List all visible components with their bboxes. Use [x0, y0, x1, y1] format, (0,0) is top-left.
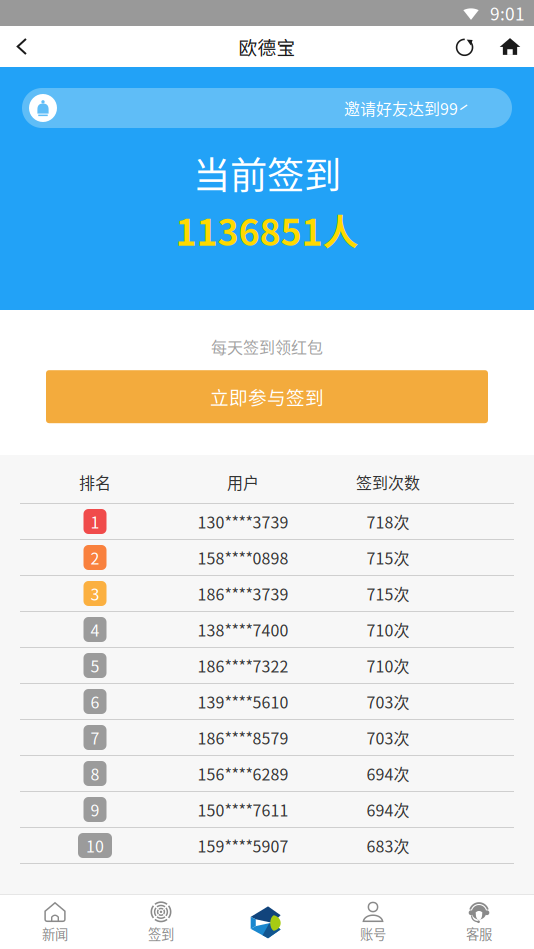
- staticText: 683次: [366, 834, 409, 857]
- staticText: 1: [90, 510, 99, 533]
- button[interactable]: 签到: [108, 895, 214, 949]
- staticText: 10: [86, 834, 104, 857]
- staticText: 9:01: [490, 0, 525, 26]
- button[interactable]: 客服: [426, 895, 532, 949]
- staticText: 5: [90, 654, 99, 677]
- staticText: 186****3739: [197, 582, 288, 605]
- staticText: 欧德宝: [238, 33, 295, 60]
- button[interactable]: 新闻: [2, 895, 108, 949]
- staticText: 139****5610: [197, 690, 288, 713]
- button[interactable]: 刷新: [444, 26, 486, 67]
- staticText: 156****6289: [197, 762, 288, 785]
- staticText: 账号: [360, 924, 386, 943]
- staticText: 3: [90, 582, 99, 605]
- staticText: 715次: [366, 546, 409, 569]
- button[interactable]: 立即参与签到: [46, 370, 488, 423]
- staticText: 710次: [366, 618, 409, 641]
- staticText: 新闻: [42, 924, 68, 943]
- staticText: 703次: [366, 726, 409, 749]
- staticText: 签到: [148, 924, 174, 943]
- staticText: 186****8579: [197, 726, 288, 749]
- button[interactable]: 欧德宝: [214, 895, 320, 949]
- staticText: 158****0898: [197, 546, 288, 569]
- staticText: 2: [90, 546, 99, 569]
- staticText: 1136851人: [175, 204, 358, 256]
- staticText: 7: [90, 726, 99, 749]
- staticText: 6: [90, 690, 99, 713]
- staticText: 每天签到领红包: [211, 335, 323, 358]
- staticText: 9: [90, 798, 99, 821]
- button[interactable]: 邀请好友达到99: [22, 88, 512, 128]
- staticText: 4: [90, 618, 99, 641]
- staticText: 710次: [366, 654, 409, 677]
- staticText: 排名: [79, 470, 111, 494]
- staticText: 159****5907: [197, 834, 288, 857]
- staticText: 邀请好友达到99: [344, 96, 458, 120]
- staticText: 8: [90, 762, 99, 785]
- staticText: 130****3739: [197, 510, 288, 533]
- staticText: 150****7611: [197, 798, 288, 821]
- staticText: 当前签到: [193, 146, 341, 200]
- staticText: 186****7322: [197, 654, 288, 677]
- staticText: 立即参与签到: [210, 383, 324, 410]
- staticText: 694次: [366, 798, 409, 821]
- button[interactable]: 首页: [486, 26, 534, 67]
- staticText: 694次: [366, 762, 409, 785]
- button[interactable]: 账号: [320, 895, 426, 949]
- staticText: 715次: [366, 582, 409, 605]
- staticText: 718次: [366, 510, 409, 533]
- staticText: 签到次数: [356, 470, 420, 494]
- staticText: 客服: [466, 924, 492, 943]
- button[interactable]: 返回: [0, 26, 44, 67]
- staticText: 用户: [227, 470, 259, 494]
- staticText: 138****7400: [197, 618, 288, 641]
- staticText: 703次: [366, 690, 409, 713]
